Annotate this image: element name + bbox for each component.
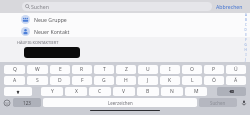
staticText: Q xyxy=(13,66,17,73)
button[interactable]: D xyxy=(50,76,70,85)
staticText: O xyxy=(190,66,194,73)
button[interactable]: Diktat xyxy=(239,98,248,107)
button[interactable]: F xyxy=(72,76,92,85)
button[interactable]: Z xyxy=(116,65,136,74)
button[interactable]: Ö xyxy=(204,76,224,85)
button[interactable]: G xyxy=(94,76,114,85)
staticText: R xyxy=(80,66,84,73)
button[interactable]: A xyxy=(4,76,25,85)
button[interactable]: K xyxy=(160,76,180,85)
staticText: F xyxy=(245,38,247,42)
button[interactable]: P xyxy=(204,65,224,74)
button[interactable]: O xyxy=(182,65,202,74)
button[interactable]: Emoji xyxy=(2,98,11,107)
button[interactable]: Suchen xyxy=(199,98,237,107)
staticText: Suchen xyxy=(31,3,49,10)
staticText: HÄUFIG KONTAKTIERT xyxy=(17,40,59,45)
staticText: Neuer Kontakt xyxy=(34,28,70,35)
staticText: F xyxy=(81,77,84,84)
button[interactable]: Q xyxy=(4,65,25,74)
button[interactable]: N xyxy=(161,87,183,96)
button[interactable]: I xyxy=(160,65,180,74)
button[interactable]: R xyxy=(72,65,92,74)
button[interactable]: H xyxy=(116,76,136,85)
staticText: N xyxy=(170,88,174,95)
button[interactable]: M xyxy=(185,87,207,96)
staticText: C xyxy=(98,88,102,95)
staticText: G xyxy=(102,77,106,84)
button[interactable]: Backspace xyxy=(217,87,246,96)
staticText: W xyxy=(35,66,40,73)
staticText: B xyxy=(146,88,150,95)
staticText: D xyxy=(58,77,62,84)
staticText: Ö xyxy=(212,77,216,84)
button[interactable]: Ä xyxy=(226,76,246,85)
button[interactable]: Suchen xyxy=(22,2,212,11)
button[interactable]: B xyxy=(137,87,159,96)
staticText: Y xyxy=(51,88,54,95)
button[interactable]: X xyxy=(65,87,87,96)
button[interactable]: V xyxy=(113,87,135,96)
staticText: J xyxy=(245,58,246,62)
staticText: Leerzeichen xyxy=(108,100,133,106)
staticText: Ä xyxy=(234,77,238,84)
staticText: M xyxy=(194,88,199,95)
staticText: 123 xyxy=(23,100,31,106)
staticText: Abbrechen xyxy=(216,3,243,10)
staticText: H xyxy=(244,48,247,52)
staticText: B xyxy=(245,18,247,22)
button[interactable]: W xyxy=(27,65,48,74)
staticText: V xyxy=(122,88,126,95)
staticText: S xyxy=(36,77,39,84)
staticText: Ü xyxy=(234,66,238,73)
staticText: I xyxy=(245,53,247,57)
button[interactable]: E xyxy=(50,65,70,74)
button[interactable]: Leerzeichen xyxy=(43,98,197,107)
staticText: E xyxy=(59,66,62,73)
button[interactable]: Y xyxy=(41,87,63,96)
button[interactable]: Neue Gruppe xyxy=(0,13,250,25)
staticText: Neue Gruppe xyxy=(34,16,67,23)
staticText: L xyxy=(191,77,194,84)
button[interactable]: T xyxy=(94,65,114,74)
button[interactable]: Shift xyxy=(4,87,32,96)
staticText: C xyxy=(245,23,247,27)
staticText: Z xyxy=(125,66,128,73)
button[interactable]: 123 xyxy=(13,98,41,107)
staticText: P xyxy=(212,66,216,73)
button[interactable]: L xyxy=(182,76,202,85)
staticText: I xyxy=(169,66,171,73)
staticText: K xyxy=(168,77,172,84)
staticText: J xyxy=(147,77,149,84)
staticText: A xyxy=(245,13,247,17)
staticText: Suchen xyxy=(210,100,226,106)
staticText: A xyxy=(13,77,17,84)
staticText: U xyxy=(146,66,150,73)
button[interactable]: Ü xyxy=(226,65,246,74)
button[interactable]: U xyxy=(138,65,158,74)
button[interactable]: C xyxy=(89,87,111,96)
button[interactable]: Abbrechen xyxy=(215,3,244,10)
button[interactable]: Neuer Kontakt xyxy=(0,25,250,37)
button[interactable]: S xyxy=(27,76,48,85)
staticText: E xyxy=(245,33,247,37)
staticText: H xyxy=(124,77,128,84)
button[interactable]: J xyxy=(138,76,158,85)
staticText: D xyxy=(244,28,247,32)
staticText: X xyxy=(75,88,78,95)
staticText: G xyxy=(244,43,247,47)
staticText: T xyxy=(103,66,106,73)
